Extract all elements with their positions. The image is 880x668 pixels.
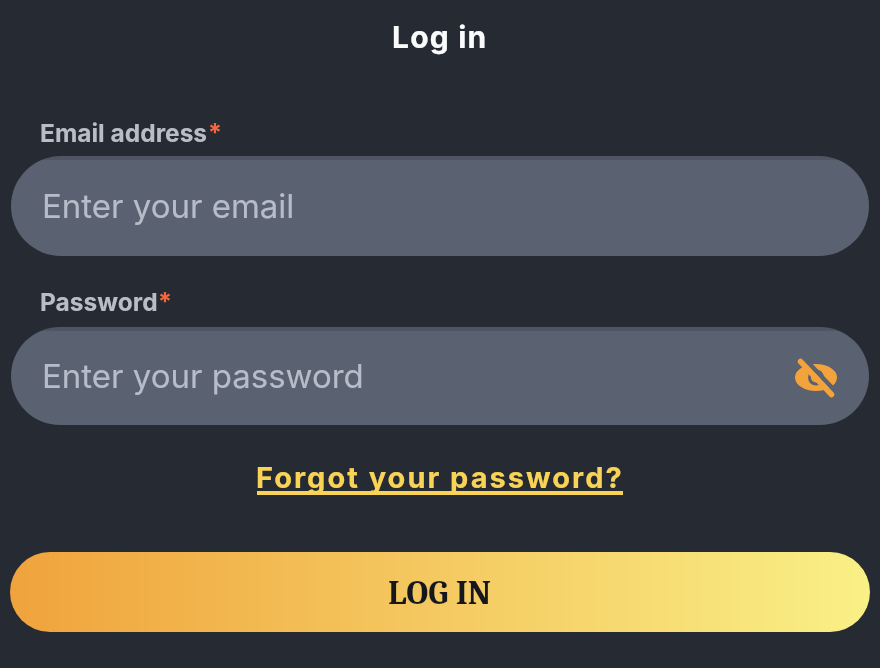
staticText: LOG IN	[388, 573, 492, 612]
staticText: Forgot your password?	[256, 460, 624, 495]
staticText: *	[158, 287, 172, 317]
button[interactable]: LOG IN	[10, 552, 870, 632]
staticText: Enter your email	[42, 186, 295, 226]
staticText: Log in	[392, 19, 488, 55]
button[interactable]	[794, 360, 838, 400]
button[interactable]: Forgot your password?	[256, 460, 624, 495]
staticText: Email address	[40, 118, 208, 148]
staticText: Password	[40, 287, 158, 317]
button[interactable]: Enter your password	[11, 327, 869, 425]
staticText: Enter your password	[42, 356, 364, 396]
button[interactable]: Enter your email	[11, 156, 869, 256]
staticText: *	[208, 118, 222, 148]
